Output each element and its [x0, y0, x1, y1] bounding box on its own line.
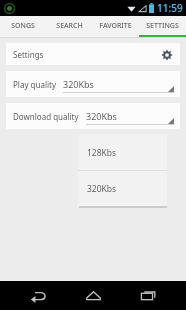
staticText: SONGS	[11, 21, 35, 31]
button[interactable]: 320Kbs	[63, 71, 174, 97]
button[interactable]: Back	[21, 281, 55, 310]
staticText: 128Kbs	[87, 147, 117, 159]
staticText: 320Kbs	[63, 78, 94, 90]
staticText: Settings	[13, 49, 44, 60]
staticText: SEARCH	[56, 21, 83, 31]
button[interactable]: FAVORITE	[92, 16, 139, 35]
button[interactable]: SEARCH	[46, 16, 92, 35]
button[interactable]: Settings	[160, 48, 173, 61]
staticText: 320Kbs	[87, 183, 117, 195]
button[interactable]: 320Kbs	[78, 171, 167, 206]
button[interactable]: 320Kbs	[86, 103, 174, 129]
staticText: SETTINGS	[146, 21, 179, 31]
button[interactable]: Settings	[6, 43, 180, 65]
staticText: 11:59	[157, 1, 183, 15]
button[interactable]: Home	[76, 281, 110, 310]
staticText: Play quality	[13, 79, 56, 90]
button[interactable]: SETTINGS	[139, 16, 186, 35]
button[interactable]: Recents	[131, 281, 165, 310]
staticText: 320Kbs	[86, 110, 117, 122]
button[interactable]: SONGS	[0, 16, 46, 35]
staticText: Download quality	[13, 111, 79, 122]
button[interactable]: 128Kbs	[78, 135, 167, 170]
staticText: FAVORITE	[99, 21, 132, 31]
